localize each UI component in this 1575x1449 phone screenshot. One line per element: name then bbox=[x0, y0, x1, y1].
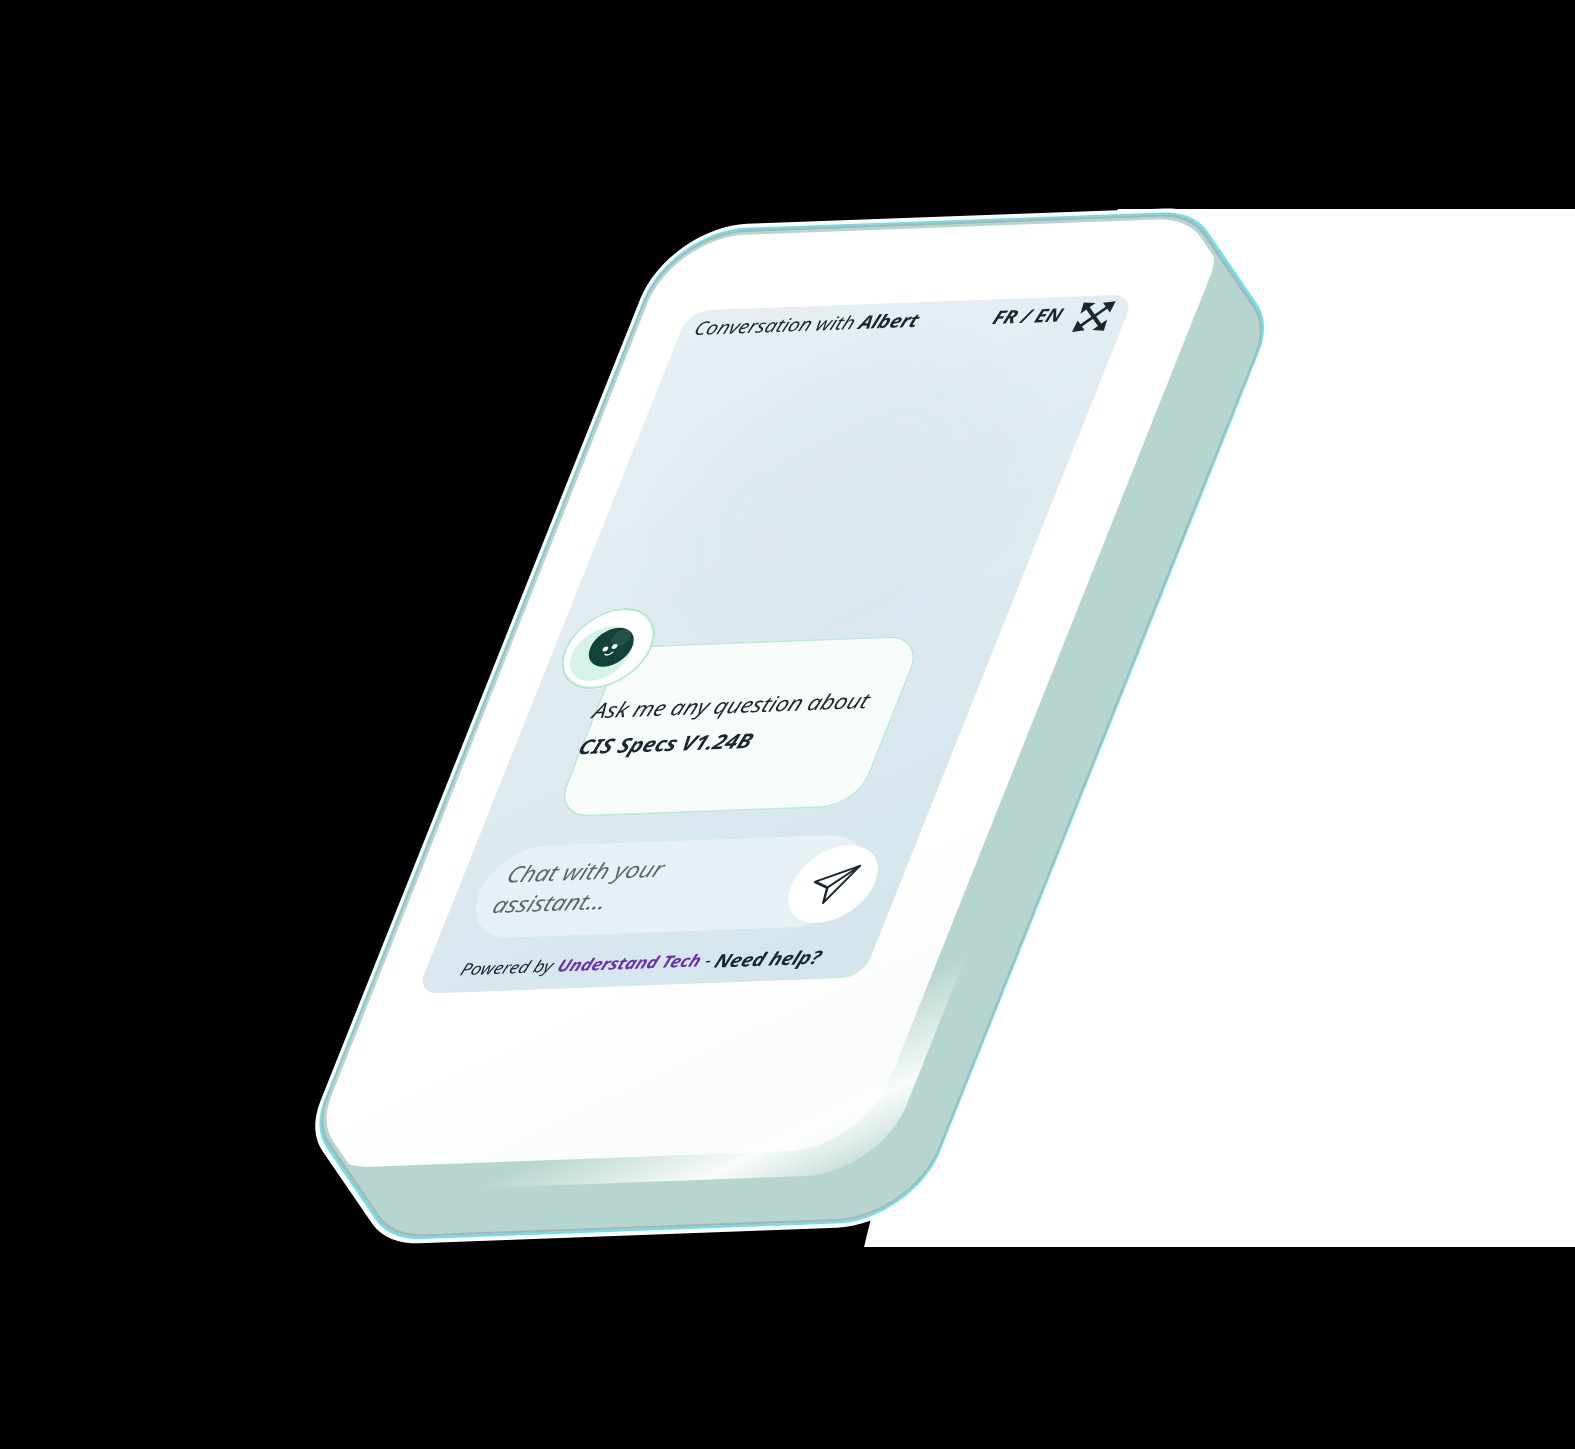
staticText: CIS Specs V1.24B bbox=[575, 726, 758, 760]
button[interactable]: FR / EN bbox=[989, 302, 1067, 329]
staticText: Chat with your bbox=[502, 853, 670, 889]
staticText: FR / EN bbox=[989, 302, 1067, 329]
button[interactable]: Send message bbox=[776, 844, 890, 924]
staticText: Albert bbox=[855, 307, 924, 334]
staticText: Conversation with bbox=[691, 310, 865, 341]
staticText: Need help? bbox=[711, 944, 826, 973]
button[interactable] bbox=[461, 833, 879, 940]
staticText: - bbox=[697, 948, 721, 972]
button[interactable]: Powered by bbox=[456, 944, 826, 983]
staticText: Ask me any question about bbox=[589, 685, 876, 724]
staticText: Powered by bbox=[457, 954, 563, 981]
staticText: Understand Tech bbox=[554, 949, 706, 977]
staticText: assistant... bbox=[488, 885, 613, 920]
button[interactable] bbox=[552, 635, 925, 818]
button[interactable]: Conversation with bbox=[691, 307, 924, 341]
button[interactable]: Expand conversation bbox=[1071, 300, 1117, 333]
button[interactable]: Assistant Albert bbox=[548, 606, 668, 691]
